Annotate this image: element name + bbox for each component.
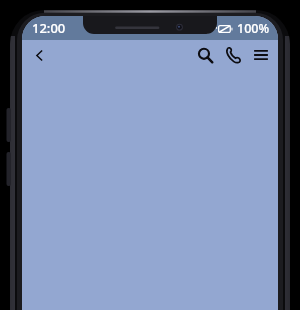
button[interactable]: Call	[220, 42, 246, 68]
button[interactable]: Search	[192, 42, 218, 68]
button[interactable]: Back	[25, 41, 53, 69]
staticText: 100%	[237, 20, 270, 37]
button[interactable]: Menu	[248, 42, 274, 68]
staticText: 12:00	[32, 19, 66, 37]
